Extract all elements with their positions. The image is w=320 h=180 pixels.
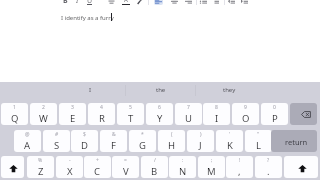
button[interactable]: :: [169, 156, 196, 178]
button[interactable]: 4: [88, 103, 115, 125]
staticText: +: [96, 157, 99, 164]
staticText: 2: [42, 104, 45, 111]
staticText: N: [179, 165, 187, 178]
button[interactable]: Align right: [185, 0, 192, 4]
staticText: D: [81, 139, 88, 152]
button[interactable]: @: [14, 130, 41, 152]
staticText: I identify as a furry: [61, 14, 114, 22]
staticText: B: [151, 165, 158, 178]
staticText: 7: [187, 104, 190, 111]
staticText: F: [111, 139, 116, 152]
button[interactable]: the: [126, 82, 195, 98]
staticText: Z: [38, 165, 44, 178]
staticText: .: [267, 165, 270, 178]
staticText: K: [227, 139, 233, 152]
staticText: U: [87, 0, 93, 5]
button[interactable]: return: [271, 130, 317, 152]
button[interactable]: 7: [175, 103, 202, 125]
staticText: V: [123, 165, 129, 178]
button[interactable]: they: [196, 82, 263, 98]
button[interactable]: 1: [1, 103, 28, 125]
button[interactable]: Shift: [284, 156, 318, 178]
staticText: #: [55, 131, 59, 138]
button[interactable]: #: [43, 130, 70, 152]
staticText: H: [168, 139, 176, 152]
staticText: 6: [158, 104, 161, 111]
staticText: ": [257, 131, 260, 138]
staticText: P: [272, 112, 278, 125]
button[interactable]: Text colour: [122, 0, 130, 5]
staticText: A: [124, 0, 128, 4]
button[interactable]: &: [100, 130, 127, 152]
staticText: 5: [129, 104, 132, 111]
staticText: G: [139, 139, 146, 152]
button[interactable]: Bold: [62, 0, 68, 4]
staticText: W: [39, 112, 48, 125]
staticText: M: [207, 165, 216, 178]
staticText: $: [83, 131, 86, 138]
button[interactable]: Bulleted list: [200, 0, 207, 4]
button[interactable]: 5: [117, 103, 144, 125]
button[interactable]: !: [226, 156, 253, 178]
staticText: *: [141, 131, 144, 138]
staticText: %: [38, 157, 43, 164]
staticText: 3: [71, 104, 74, 111]
staticText: ;: [211, 157, 213, 164]
staticText: 0: [273, 104, 276, 111]
button[interactable]: Numbered list: [212, 0, 219, 4]
button[interactable]: %: [27, 156, 54, 178]
staticText: I: [89, 86, 92, 94]
staticText: C: [94, 165, 101, 178]
button[interactable]: Backspace: [290, 103, 317, 125]
staticText: 9: [244, 104, 247, 111]
button[interactable]: Decrease indent: [228, 0, 235, 4]
button[interactable]: -: [56, 156, 83, 178]
button[interactable]: Increase indent: [241, 0, 248, 4]
button[interactable]: (: [158, 130, 185, 152]
button[interactable]: ?: [255, 156, 282, 178]
button[interactable]: Align centre: [171, 0, 178, 4]
button[interactable]: ': [216, 130, 243, 152]
button[interactable]: 9: [232, 103, 259, 125]
staticText: O: [242, 112, 250, 125]
button[interactable]: Strikethrough: [108, 0, 115, 4]
button[interactable]: +: [84, 156, 111, 178]
staticText: J: [199, 139, 202, 152]
staticText: Q: [11, 112, 19, 125]
button[interactable]: Highlight: [137, 0, 144, 4]
staticText: &: [112, 131, 116, 138]
button[interactable]: 8: [203, 103, 230, 125]
button[interactable]: Underline: [86, 0, 93, 5]
staticText: X: [67, 165, 73, 178]
staticText: /: [154, 157, 156, 164]
button[interactable]: =: [112, 156, 139, 178]
button[interactable]: 6: [146, 103, 173, 125]
button[interactable]: Align left: [154, 0, 163, 5]
staticText: ): [200, 131, 202, 138]
staticText: L: [256, 139, 261, 152]
staticText: I: [215, 112, 219, 125]
button[interactable]: 0: [261, 103, 288, 125]
staticText: !: [239, 157, 241, 164]
button[interactable]: /: [141, 156, 168, 178]
button[interactable]: ;: [198, 156, 225, 178]
staticText: A: [24, 139, 31, 152]
staticText: B: [63, 0, 68, 4]
staticText: S: [54, 139, 60, 152]
button[interactable]: ): [187, 130, 214, 152]
button[interactable]: Italic: [74, 0, 80, 4]
staticText: I: [76, 0, 79, 4]
staticText: T: [128, 112, 134, 125]
button[interactable]: 2: [30, 103, 57, 125]
button[interactable]: $: [71, 130, 98, 152]
staticText: =: [124, 157, 127, 164]
staticText: @: [25, 131, 30, 138]
button[interactable]: 3: [59, 103, 86, 125]
staticText: -: [69, 157, 71, 164]
button[interactable]: ": [245, 130, 272, 152]
button[interactable]: *: [129, 130, 156, 152]
staticText: 1: [13, 104, 16, 111]
staticText: :: [182, 157, 184, 164]
button[interactable]: I: [20, 82, 161, 98]
button[interactable]: Shift: [1, 156, 24, 178]
